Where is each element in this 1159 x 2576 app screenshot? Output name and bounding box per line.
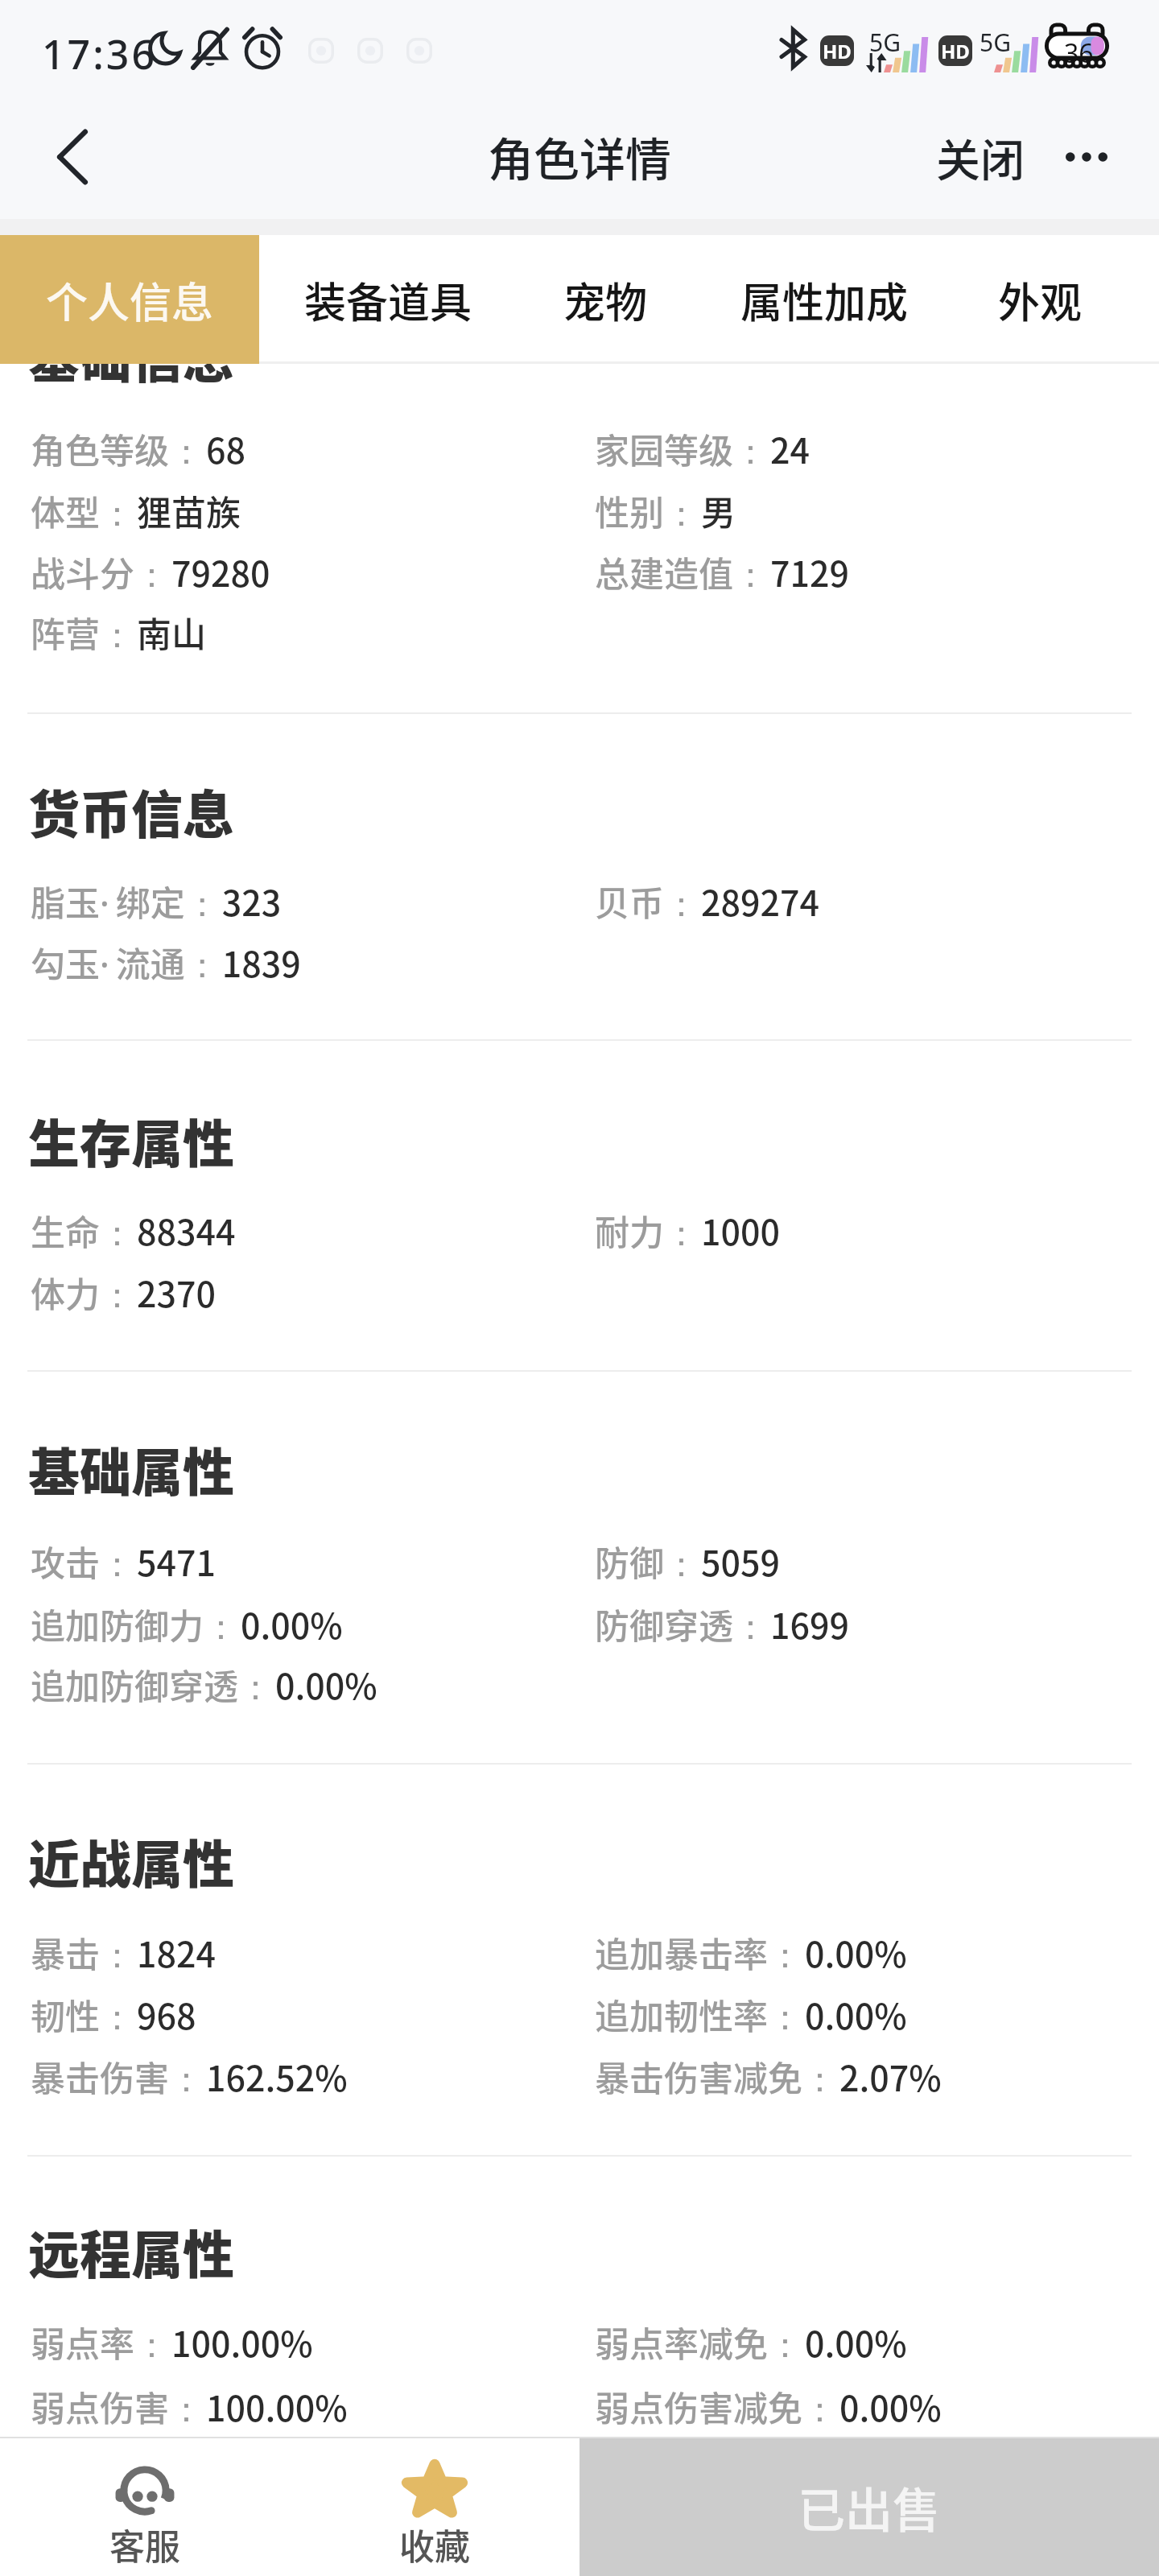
staticText: 外观 bbox=[998, 270, 1083, 330]
staticText: 5G bbox=[980, 26, 1011, 59]
staticText: 勾玉·流通：1839 bbox=[31, 937, 301, 988]
staticText: 弱点伤害减免：0.00% bbox=[595, 2381, 942, 2432]
staticText: 韧性：968 bbox=[31, 1989, 196, 2040]
staticText: 关闭 bbox=[936, 125, 1025, 189]
staticText: HD bbox=[823, 38, 852, 64]
button[interactable]: Back bbox=[0, 95, 145, 219]
staticText: HD bbox=[941, 38, 970, 64]
staticText: 体型：狸苗族 bbox=[31, 485, 241, 536]
staticText: 战斗分：79280 bbox=[31, 547, 270, 597]
button[interactable]: 装备道具 bbox=[285, 235, 491, 364]
staticText: 弱点率减免：0.00% bbox=[595, 2317, 907, 2368]
staticText: 耐力：1000 bbox=[595, 1205, 781, 1256]
staticText: 属性加成 bbox=[740, 270, 909, 330]
staticText: 暴击伤害：162.52% bbox=[31, 2051, 348, 2102]
staticText: 个人信息 bbox=[46, 270, 214, 330]
staticText: 性别：男 bbox=[595, 485, 736, 536]
button[interactable]: 个人信息 bbox=[0, 235, 259, 364]
staticText: 角色等级：68 bbox=[31, 423, 246, 474]
staticText: 追加防御穿透：0.00% bbox=[31, 1659, 377, 1710]
staticText: 弱点率：100.00% bbox=[31, 2317, 313, 2368]
staticText: 暴击：1824 bbox=[31, 1927, 217, 1978]
staticText: 防御：5059 bbox=[595, 1536, 781, 1587]
button[interactable]: 关闭 bbox=[917, 95, 1037, 219]
staticText: 17:36 bbox=[42, 27, 157, 81]
staticText: 客服 bbox=[109, 2519, 180, 2570]
staticText: 装备道具 bbox=[304, 270, 472, 330]
staticText: 追加防御力：0.00% bbox=[31, 1599, 343, 1649]
button[interactable]: 已出售 bbox=[579, 2438, 1159, 2576]
staticText: 阵营：南山 bbox=[31, 607, 206, 658]
staticText: 暴击伤害减免：2.07% bbox=[595, 2051, 942, 2102]
staticText: 已出售 bbox=[798, 2473, 941, 2541]
staticText: 5G bbox=[869, 26, 901, 59]
staticText: 宠物 bbox=[563, 270, 648, 330]
staticText: 基础属性 bbox=[28, 1431, 234, 1506]
staticText: 攻击：5471 bbox=[31, 1536, 217, 1587]
staticText: 基础信息 bbox=[28, 318, 234, 393]
staticText: 体力：2370 bbox=[31, 1267, 217, 1318]
staticText: 追加韧性率：0.00% bbox=[595, 1989, 907, 2040]
button[interactable]: 外观 bbox=[979, 235, 1101, 364]
staticText: 生命：88344 bbox=[31, 1205, 236, 1256]
staticText: 36 bbox=[1064, 35, 1094, 71]
staticText: 总建造值：7129 bbox=[595, 547, 850, 597]
staticText: 防御穿透：1699 bbox=[595, 1599, 850, 1649]
staticText: 生存属性 bbox=[28, 1103, 234, 1178]
button[interactable]: 客服 bbox=[0, 2438, 290, 2576]
staticText: 角色详情 bbox=[488, 123, 671, 190]
button[interactable]: More options bbox=[1046, 95, 1143, 219]
staticText: 家园等级：24 bbox=[595, 423, 810, 474]
staticText: 追加暴击率：0.00% bbox=[595, 1927, 907, 1978]
staticText: 货币信息 bbox=[28, 774, 234, 848]
button[interactable]: 宠物 bbox=[544, 235, 666, 364]
staticText: 近战属性 bbox=[28, 1823, 234, 1898]
staticText: 贝币：289274 bbox=[595, 876, 820, 927]
staticText: 收藏 bbox=[399, 2519, 470, 2570]
button[interactable]: 收藏 bbox=[290, 2438, 579, 2576]
button[interactable]: 属性加成 bbox=[721, 235, 927, 364]
staticText: 弱点伤害：100.00% bbox=[31, 2381, 348, 2432]
staticText: 远程属性 bbox=[28, 2214, 234, 2289]
staticText: 脂玉·绑定：323 bbox=[31, 876, 282, 927]
